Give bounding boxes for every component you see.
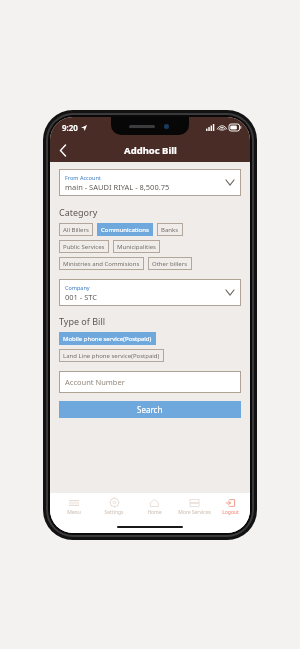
staticText: Municipalities bbox=[117, 243, 156, 251]
button[interactable]: Menu bbox=[54, 493, 94, 521]
button[interactable]: Back bbox=[50, 138, 76, 162]
button[interactable]: Mobile phone service(Postpaid) bbox=[59, 332, 156, 345]
staticText: Banks bbox=[161, 226, 179, 234]
staticText: Communications bbox=[101, 226, 149, 234]
button[interactable]: Account Number bbox=[59, 371, 241, 393]
staticText: 9:20 bbox=[62, 122, 78, 133]
staticText: 001 - STC bbox=[65, 292, 98, 302]
staticText: Logout bbox=[222, 509, 239, 516]
staticText: All Billers bbox=[63, 226, 89, 234]
staticText: More Services bbox=[178, 509, 211, 516]
staticText: Company bbox=[65, 284, 90, 291]
staticText: Ministries and Commisions bbox=[63, 260, 140, 268]
button[interactable]: Land Line phone service(Postpaid) bbox=[59, 349, 164, 362]
staticText: Home bbox=[147, 509, 162, 516]
button[interactable]: From Account bbox=[59, 169, 241, 196]
button[interactable]: Home bbox=[134, 493, 174, 521]
staticText: Addhoc Bill bbox=[124, 144, 177, 157]
staticText: Land Line phone service(Postpaid) bbox=[63, 352, 160, 360]
staticText: main - SAUDI RIYAL - 8,500.75 bbox=[65, 182, 170, 192]
staticText: Type of Bill bbox=[59, 315, 106, 327]
button[interactable]: Settings bbox=[94, 493, 134, 521]
staticText: From Account bbox=[65, 174, 101, 181]
button[interactable]: Communications bbox=[97, 223, 153, 236]
button[interactable]: Ministries and Commisions bbox=[59, 257, 144, 270]
staticText: Other billers bbox=[152, 260, 188, 268]
button[interactable]: Banks bbox=[157, 223, 183, 236]
button[interactable]: Search bbox=[59, 401, 241, 418]
button[interactable]: Municipalities bbox=[113, 240, 160, 253]
button[interactable]: Public Services bbox=[59, 240, 109, 253]
staticText: Public Services bbox=[63, 243, 105, 251]
staticText: Menu bbox=[67, 509, 81, 516]
button[interactable]: More Services bbox=[174, 493, 214, 521]
button[interactable]: All Billers bbox=[59, 223, 93, 236]
staticText: Settings bbox=[104, 509, 124, 516]
staticText: Search bbox=[137, 404, 163, 415]
staticText: Category bbox=[59, 206, 98, 218]
button[interactable]: Logout bbox=[214, 493, 246, 521]
staticText: Mobile phone service(Postpaid) bbox=[63, 335, 152, 343]
staticText: Account Number bbox=[65, 377, 125, 387]
button[interactable]: Company bbox=[59, 279, 241, 306]
button[interactable]: Other billers bbox=[148, 257, 192, 270]
